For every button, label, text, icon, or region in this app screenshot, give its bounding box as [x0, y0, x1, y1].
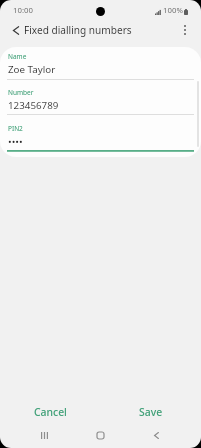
staticText: Zoe Taylor: [8, 63, 56, 76]
staticText: ••••: [8, 135, 23, 148]
button[interactable]: Back: [144, 423, 169, 448]
button[interactable]: More options: [174, 19, 196, 41]
staticText: Cancel: [34, 405, 67, 419]
staticText: PIN2: [8, 124, 23, 133]
staticText: Number: [8, 88, 34, 97]
staticText: 123456789: [8, 99, 59, 112]
staticText: Fixed dialling numbers: [24, 23, 132, 37]
button[interactable]: Recent apps: [32, 423, 57, 448]
staticText: 10:00: [13, 5, 33, 16]
staticText: 100%: [163, 5, 183, 16]
staticText: Name: [8, 52, 27, 61]
button[interactable]: Save: [100, 400, 201, 424]
button[interactable]: Navigate up: [5, 19, 27, 41]
button[interactable]: Cancel: [0, 400, 100, 424]
staticText: Save: [139, 405, 163, 419]
button[interactable]: Home: [88, 423, 113, 448]
